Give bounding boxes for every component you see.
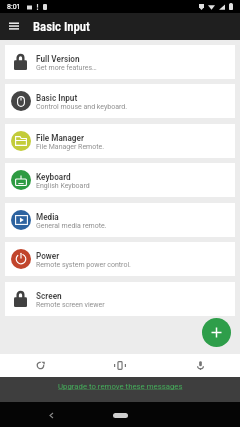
staticText: 8:01: [7, 3, 21, 11]
button[interactable]: Power: [5, 242, 235, 276]
staticText: Media: [36, 212, 59, 222]
button[interactable]: Full Version: [5, 45, 235, 79]
button[interactable]: Open navigation menu: [4, 17, 24, 37]
button[interactable]: Basic Input: [5, 84, 235, 118]
button[interactable]: Vibrate: [80, 354, 160, 377]
staticText: Control mouse and keyboard.: [36, 103, 128, 111]
staticText: File Manager: [36, 133, 84, 143]
staticText: File Manager Remote.: [36, 143, 105, 151]
button[interactable]: Voice input: [160, 354, 240, 377]
staticText: General media remote.: [36, 222, 107, 230]
button[interactable]: Home: [105, 407, 135, 423]
staticText: Screen: [36, 291, 62, 301]
button[interactable]: Refresh: [0, 354, 80, 377]
button[interactable]: Media: [5, 203, 235, 237]
button[interactable]: Screen: [5, 282, 235, 316]
staticText: Remote screen viewer: [36, 301, 105, 309]
staticText: Basic Input: [33, 19, 90, 34]
staticText: Upgrade to remove these messages: [58, 382, 183, 391]
staticText: Get more features…: [36, 64, 97, 72]
staticText: Full Version: [36, 54, 80, 64]
button[interactable]: Back: [43, 407, 59, 423]
staticText: Remote system power control.: [36, 261, 131, 269]
button[interactable]: Keyboard: [5, 163, 235, 197]
staticText: Power: [36, 251, 60, 261]
button[interactable]: File Manager: [5, 124, 235, 158]
staticText: Basic Input: [36, 93, 78, 103]
staticText: Keyboard: [36, 172, 71, 182]
button[interactable]: Upgrade to remove these messages: [0, 377, 240, 402]
staticText: English Keyboard: [36, 182, 90, 190]
button[interactable]: Add: [202, 318, 231, 347]
